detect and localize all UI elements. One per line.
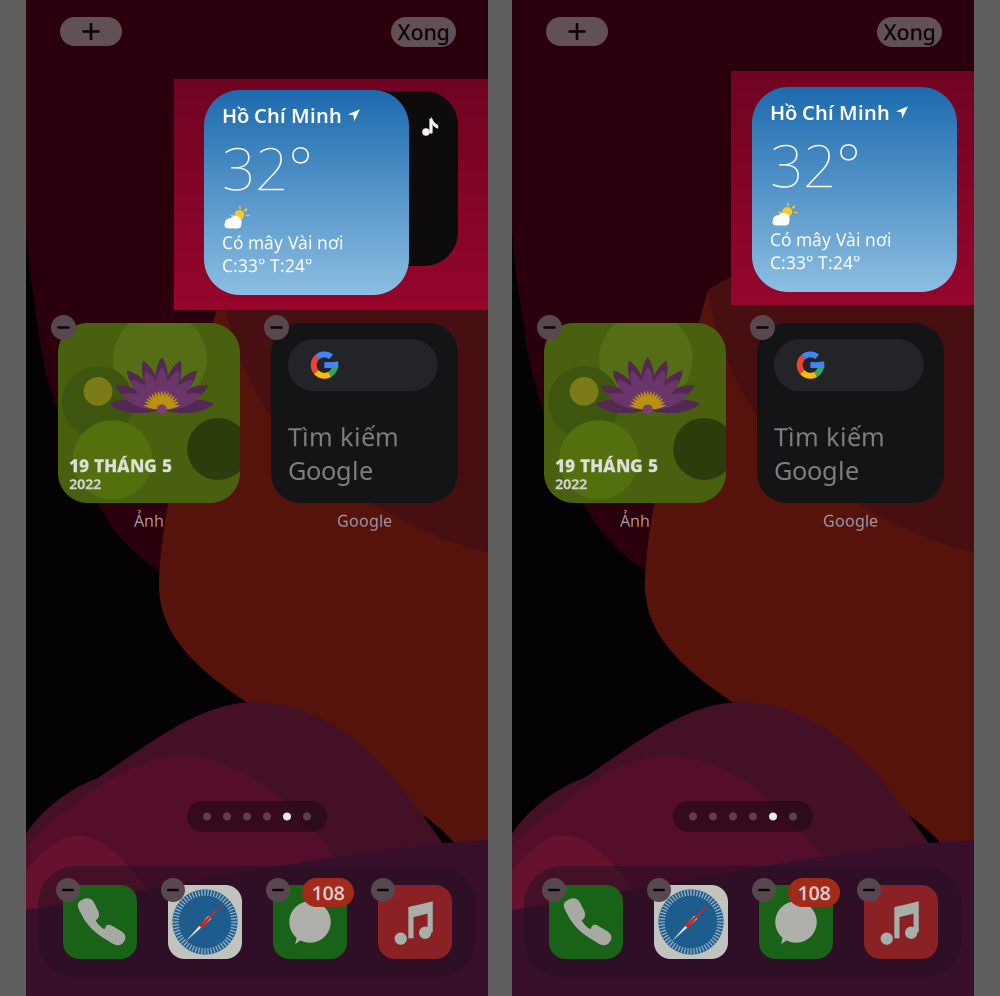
staticText: Hồ Chí Minh (222, 102, 342, 129)
button[interactable]: Phone (63, 885, 137, 959)
button[interactable]: Add widget (546, 17, 608, 46)
staticText: Google (823, 510, 878, 531)
staticText: 19 THÁNG 5 (69, 454, 172, 477)
button[interactable]: Phone (549, 885, 623, 959)
staticText: Tìm kiếm (288, 420, 399, 453)
staticText: 32° (770, 126, 861, 203)
button[interactable]: Remove Photos widget (51, 315, 76, 340)
button[interactable]: Remove Google widget (264, 315, 289, 340)
button[interactable]: Messages (759, 885, 833, 959)
button[interactable]: Remove app (542, 878, 566, 902)
staticText: Xong (397, 18, 449, 46)
button[interactable]: Google widget (271, 323, 458, 503)
staticText: Ảnh (134, 510, 164, 531)
button[interactable]: Safari (168, 885, 242, 959)
button[interactable]: Music (864, 885, 938, 959)
staticText: 2022 (69, 474, 101, 493)
button[interactable]: Google widget (757, 323, 944, 503)
staticText: Có mây Vài nơi (770, 228, 891, 251)
button[interactable]: Messages (273, 885, 347, 959)
button[interactable]: Remove Google widget (750, 315, 775, 340)
staticText: Google (288, 453, 373, 487)
staticText: 19 THÁNG 5 (555, 454, 658, 477)
button[interactable]: Xong (391, 17, 456, 47)
button[interactable]: Remove app (161, 878, 185, 902)
button[interactable]: Safari (654, 885, 728, 959)
button[interactable]: Add widget (60, 17, 122, 46)
button[interactable]: Xong (877, 17, 942, 47)
button[interactable]: Remove app (56, 878, 80, 902)
staticText: Có mây Vài nơi (222, 231, 343, 254)
staticText: Xong (883, 18, 935, 46)
staticText: Tìm kiếm (774, 420, 885, 453)
button[interactable]: Music (378, 885, 452, 959)
button[interactable]: Remove app (371, 878, 395, 902)
button[interactable]: Photos widget (544, 323, 726, 503)
button[interactable]: Remove app (647, 878, 671, 902)
staticText: 108 (797, 879, 830, 906)
staticText: 2022 (555, 474, 587, 493)
button[interactable]: Remove app (266, 878, 290, 902)
button[interactable]: Remove app (752, 878, 776, 902)
staticText: Hồ Chí Minh (770, 99, 890, 126)
staticText: 32° (222, 129, 313, 206)
button[interactable]: Remove app (857, 878, 881, 902)
staticText: 108 (311, 879, 344, 906)
button[interactable]: Remove Photos widget (537, 315, 562, 340)
staticText: Google (337, 510, 392, 531)
button[interactable]: Weather widget, Hồ Chí Minh (204, 90, 409, 295)
button[interactable]: Weather widget, Hồ Chí Minh (752, 87, 957, 292)
button[interactable]: Photos widget (58, 323, 240, 503)
staticText: Ảnh (620, 510, 650, 531)
staticText: C:33° T:24° (222, 254, 312, 277)
staticText: Google (774, 453, 859, 487)
staticText: C:33° T:24° (770, 251, 860, 274)
